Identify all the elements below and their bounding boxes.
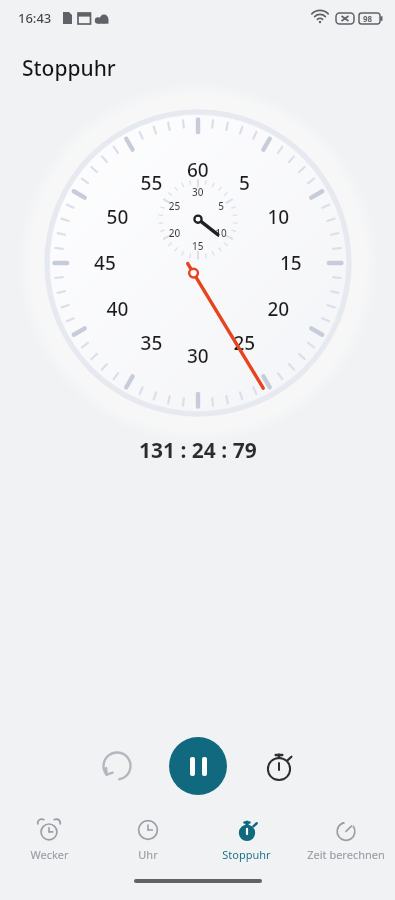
button[interactable]: Zeit berechnen	[296, 806, 395, 874]
button[interactable]: Pause	[169, 737, 227, 795]
button[interactable]: Runde	[243, 730, 315, 802]
staticText: Wecker	[30, 847, 69, 862]
staticText: 98	[363, 13, 373, 24]
button[interactable]: Uhr	[98, 806, 197, 874]
button[interactable]: Stoppuhr	[197, 806, 296, 874]
staticText: 131 : 24 : 79	[139, 436, 257, 465]
button[interactable]: Wecker	[0, 806, 98, 874]
staticText: Uhr	[138, 847, 158, 862]
staticText: 16:43	[18, 9, 52, 27]
staticText: Zeit berechnen	[307, 847, 385, 862]
staticText: Stoppuhr	[222, 847, 271, 862]
staticText: Stoppuhr	[22, 54, 116, 83]
button[interactable]: Zurücksetzen	[81, 730, 153, 802]
